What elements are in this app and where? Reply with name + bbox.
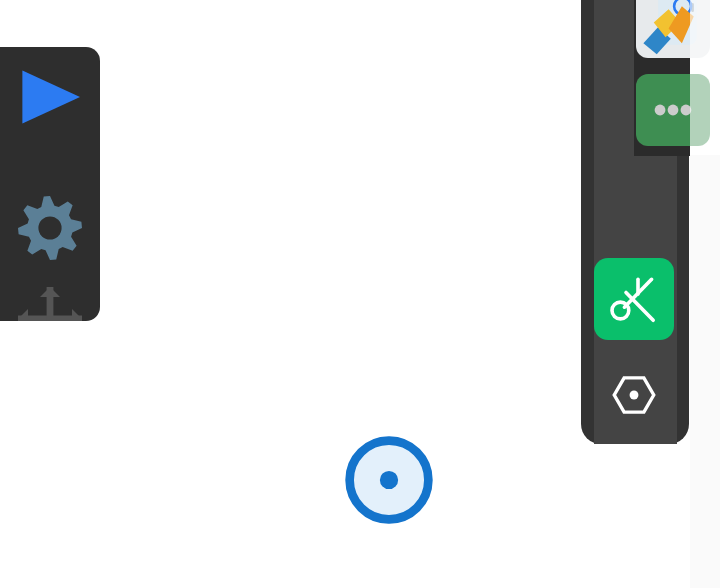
button[interactable]: Play: [10, 57, 90, 137]
button[interactable]: App: [636, 0, 710, 58]
button[interactable]: More options: [636, 74, 710, 146]
button[interactable]: Settings: [10, 188, 90, 268]
button[interactable]: Move: [10, 279, 90, 321]
button[interactable]: Record: [608, 369, 660, 421]
button[interactable]: Target position: [341, 432, 437, 528]
button[interactable]: Cut: [594, 258, 674, 340]
